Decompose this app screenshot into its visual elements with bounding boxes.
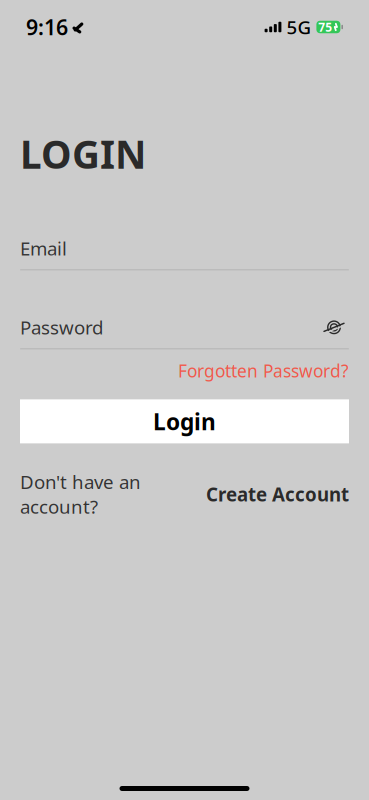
staticText: 5G [286,15,311,39]
staticText: Don't have an account? [20,469,141,519]
button[interactable]: Forgotten Password? [178,357,349,384]
staticText: Forgotten Password? [178,359,349,382]
staticText: Password [20,315,103,340]
staticText: 75 [318,19,332,35]
staticText: Email [20,236,67,261]
button[interactable]: Login [20,399,349,443]
staticText: 9:16 [26,13,68,41]
button[interactable]: Show password [319,316,349,338]
staticText: Login [153,406,216,436]
button[interactable]: Create Account [206,479,349,510]
staticText: LOGIN [20,128,146,179]
staticText: Create Account [206,482,349,507]
